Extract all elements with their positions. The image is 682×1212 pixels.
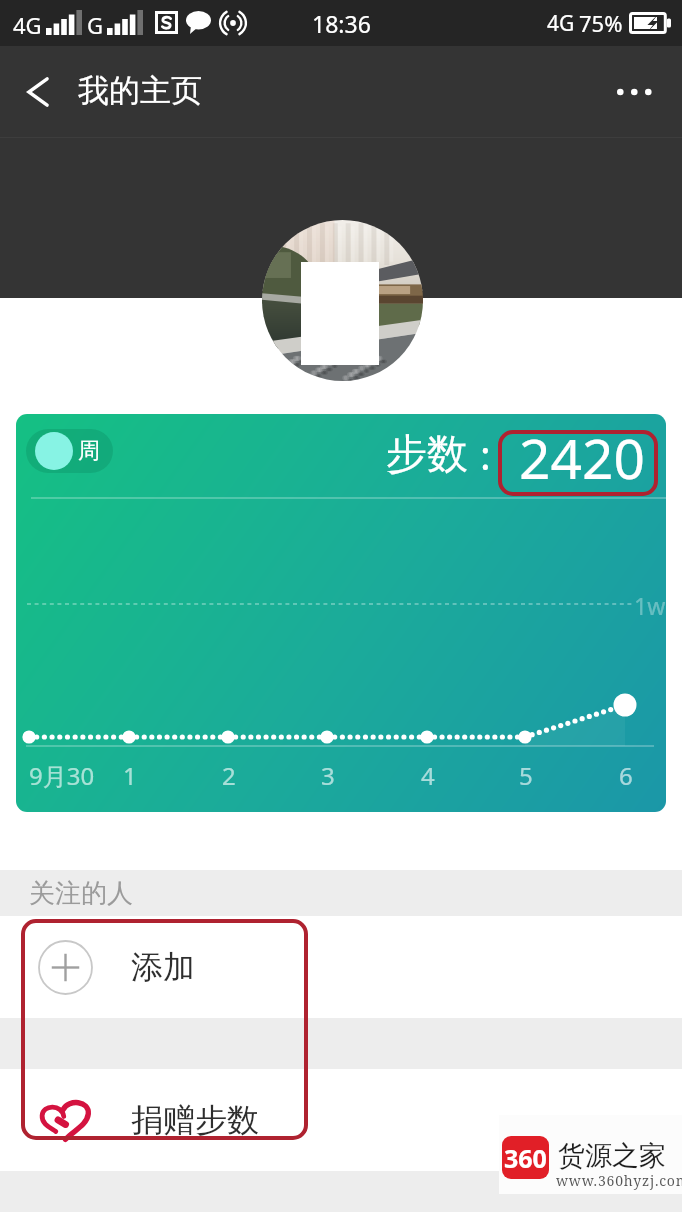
button[interactable]: Back (0, 46, 74, 137)
staticText: 75% (579, 8, 623, 38)
staticText: : (480, 427, 491, 481)
staticText: 6 (619, 759, 633, 792)
button[interactable]: Profile photo (262, 220, 423, 381)
staticText: 360 (504, 1141, 547, 1175)
staticText: 9月30 (29, 759, 95, 792)
staticText: 添加 (131, 947, 195, 987)
button[interactable]: 添加 (0, 916, 682, 1018)
staticText: 4G (547, 9, 575, 38)
button[interactable]: 捐赠步数 (0, 1069, 682, 1171)
staticText: 1 (123, 759, 137, 792)
staticText: 3 (321, 759, 335, 792)
button[interactable]: 周 (16, 414, 666, 812)
button[interactable]: More options (600, 46, 682, 137)
staticText: 18:36 (312, 8, 371, 39)
staticText: 1w (634, 590, 666, 621)
staticText: 捐赠步数 (131, 1100, 259, 1140)
button[interactable]: 周 (26, 429, 113, 473)
staticText: 货源之家 (558, 1139, 666, 1173)
staticText: 关注的人 (29, 877, 133, 910)
staticText: 5 (519, 759, 533, 792)
staticText: 我的主页 (78, 71, 202, 110)
staticText: www.360hyzj.com (556, 1171, 682, 1190)
staticText: 4G (13, 10, 42, 40)
staticText: 周 (78, 437, 100, 465)
staticText: 步数 (386, 429, 468, 481)
staticText: 4 (421, 759, 435, 792)
staticText: 2 (222, 759, 236, 792)
staticText: G (87, 10, 104, 40)
staticText: 2420 (519, 420, 645, 495)
